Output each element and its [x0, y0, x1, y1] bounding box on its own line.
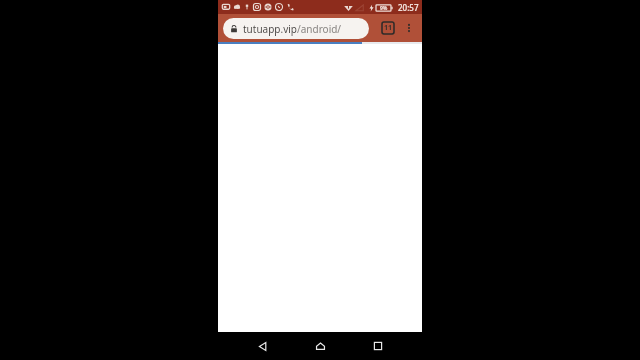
button[interactable]: Recent apps	[364, 332, 392, 360]
button[interactable]: tutuapp.vip	[223, 18, 369, 39]
staticText: 20:57	[398, 2, 419, 13]
staticText: tutuapp.vip	[243, 22, 297, 36]
staticText: 9%	[380, 5, 388, 12]
button[interactable]: More options	[399, 18, 419, 38]
button[interactable]: Back	[248, 332, 276, 360]
button[interactable]: Switch tabs	[377, 17, 399, 39]
staticText: 11	[384, 23, 393, 33]
staticText: /android/	[297, 22, 342, 36]
button[interactable]: Home	[306, 332, 334, 360]
